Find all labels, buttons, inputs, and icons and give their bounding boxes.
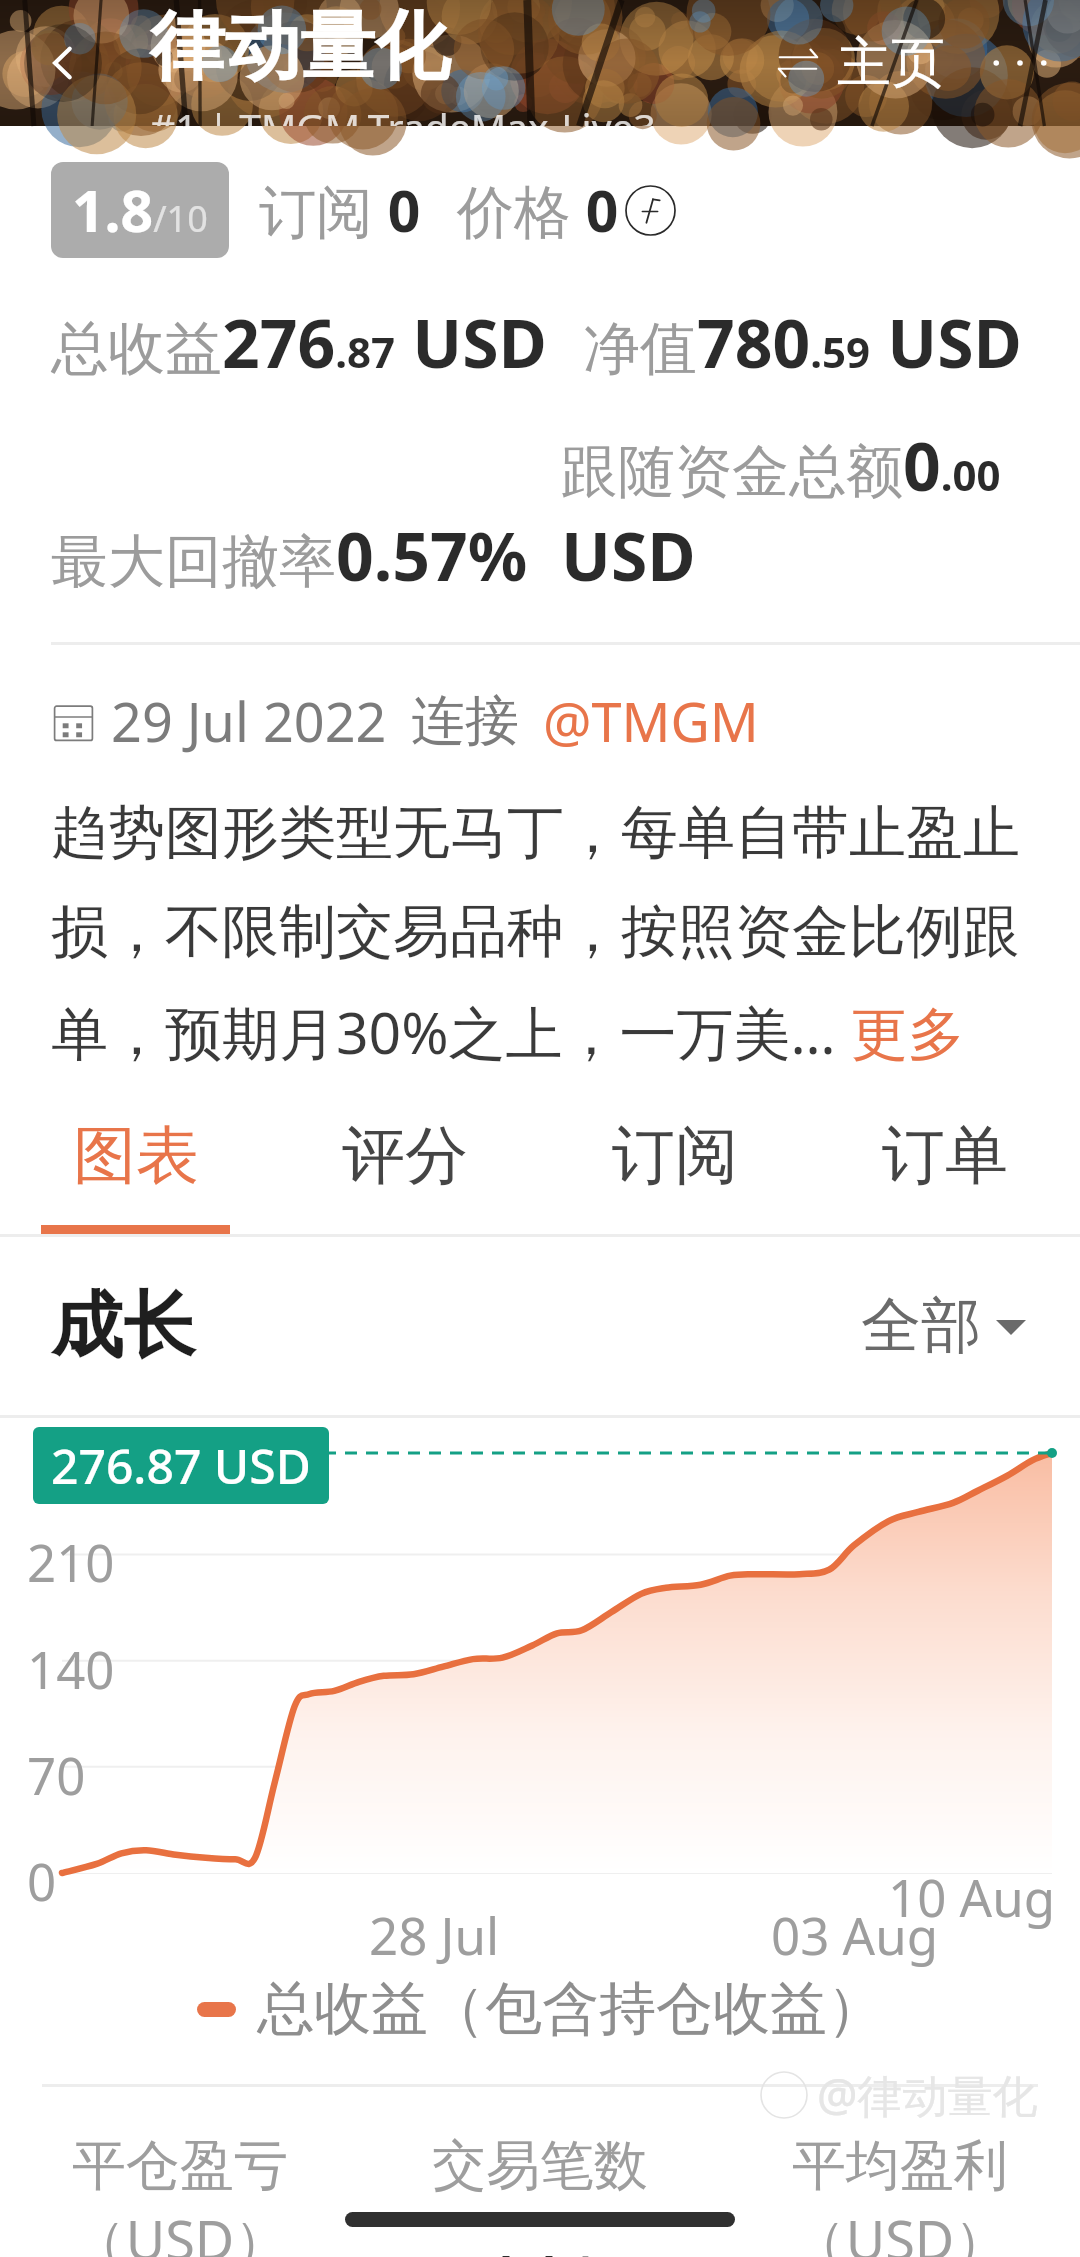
staticText: 交易笔数 <box>432 2132 648 2200</box>
staticText: 连接 <box>411 687 519 755</box>
staticText: 29 Jul 2022 <box>111 684 387 758</box>
staticText: 趋势图形类型无马丁，每单自带止盈止损，不限制交易品种，按照资金比例跟单，预期月3… <box>51 797 1038 1071</box>
button[interactable]: 趋势图形类型无马丁，每单自带止盈止损，不限制交易品种，按照资金比例跟单，预期月3… <box>51 797 1038 1071</box>
staticText: 订阅 0 <box>259 171 421 249</box>
staticText: 律动量化 <box>150 0 450 94</box>
staticText: 订阅 <box>612 1116 738 1195</box>
staticText: 210 <box>27 1527 115 1596</box>
button[interactable]: 订单 <box>810 1116 1080 1234</box>
staticText: @TMGM <box>543 684 759 758</box>
button[interactable]: More options <box>978 21 1062 105</box>
staticText: 评分 <box>342 1116 468 1195</box>
staticText: 0 <box>27 1846 57 1915</box>
staticText: 主页 <box>837 29 945 97</box>
staticText: 跟随资金总额0.00 USD <box>561 420 1038 600</box>
staticText: 70 <box>27 1740 86 1809</box>
staticText: 订单 <box>882 1116 1008 1195</box>
staticText: 1.8/10 <box>72 171 208 249</box>
staticText: 净值780.59 USD <box>583 297 1022 387</box>
staticText: 成长 <box>51 1281 195 1372</box>
button[interactable]: 图表 <box>0 1116 270 1234</box>
button[interactable]: @TMGM <box>543 684 759 758</box>
staticText: 140 <box>27 1634 115 1703</box>
staticText: @律动量化 <box>817 2064 1038 2125</box>
staticText: 总收益（包含持仓收益） <box>257 1973 884 2045</box>
button[interactable]: 订阅 <box>540 1116 810 1234</box>
button[interactable]: 主页 <box>765 17 954 109</box>
button[interactable]: Back <box>24 24 102 102</box>
staticText: 最大回撤率0.57% <box>51 510 528 600</box>
staticText: 平均盈利（USD） <box>720 2132 1080 2257</box>
staticText: 10 Aug <box>888 1862 1056 1931</box>
staticText: 28 Jul <box>369 1900 500 1969</box>
staticText: 276.87 USD <box>51 1433 311 1498</box>
staticText: 03 Aug <box>771 1900 939 1969</box>
staticText: 图表 <box>73 1116 199 1195</box>
staticText: 441 <box>476 2230 605 2257</box>
staticText: 总收益276.87 USD <box>51 297 547 387</box>
staticText: 价格 0 <box>457 171 619 249</box>
button[interactable]: 全部 <box>849 1276 1038 1376</box>
staticText: #1 | TMGM.TradeMax-Live3 <box>150 100 656 126</box>
staticText: 平仓盈亏（USD） <box>0 2132 360 2257</box>
staticText: 全部 <box>861 1288 981 1364</box>
button[interactable]: 评分 <box>270 1116 540 1234</box>
